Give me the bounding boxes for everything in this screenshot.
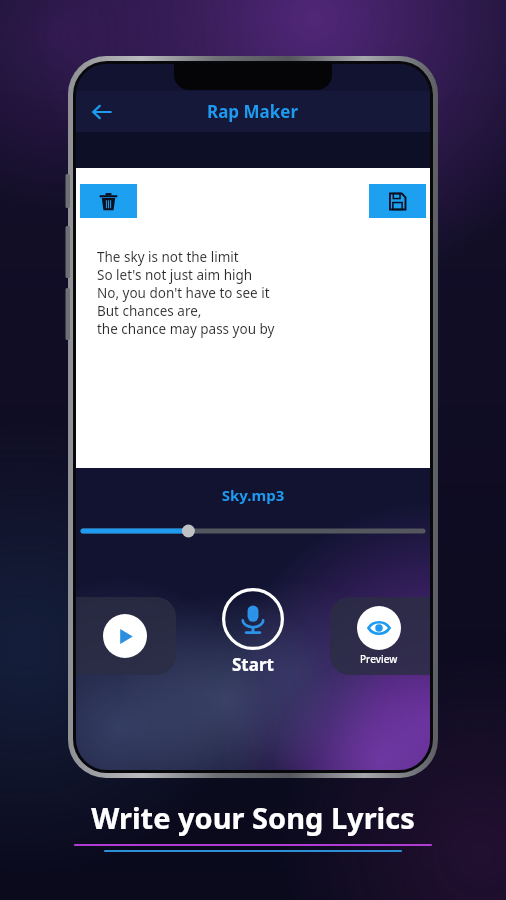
staticText: The sky is not the limit bbox=[97, 248, 239, 266]
button[interactable] bbox=[83, 522, 423, 540]
staticText: Sky.mp3 bbox=[76, 485, 430, 505]
button[interactable]: Record bbox=[222, 588, 284, 650]
button[interactable]: Back bbox=[82, 92, 122, 132]
staticText: No, you don't have to see it bbox=[97, 284, 270, 302]
staticText: But chances are, bbox=[97, 302, 202, 320]
staticText: Write your Song Lyrics bbox=[91, 798, 415, 837]
staticText: Preview bbox=[360, 652, 398, 666]
staticText: the chance may pass you by bbox=[97, 320, 275, 338]
button[interactable]: Delete bbox=[80, 184, 137, 218]
button[interactable]: Play bbox=[76, 597, 176, 675]
staticText: Rap Maker bbox=[207, 100, 299, 123]
button[interactable]: Preview bbox=[330, 597, 430, 675]
staticText: Start bbox=[232, 653, 274, 676]
staticText: So let's not just aim high bbox=[97, 266, 253, 284]
button[interactable]: Save bbox=[369, 184, 426, 218]
